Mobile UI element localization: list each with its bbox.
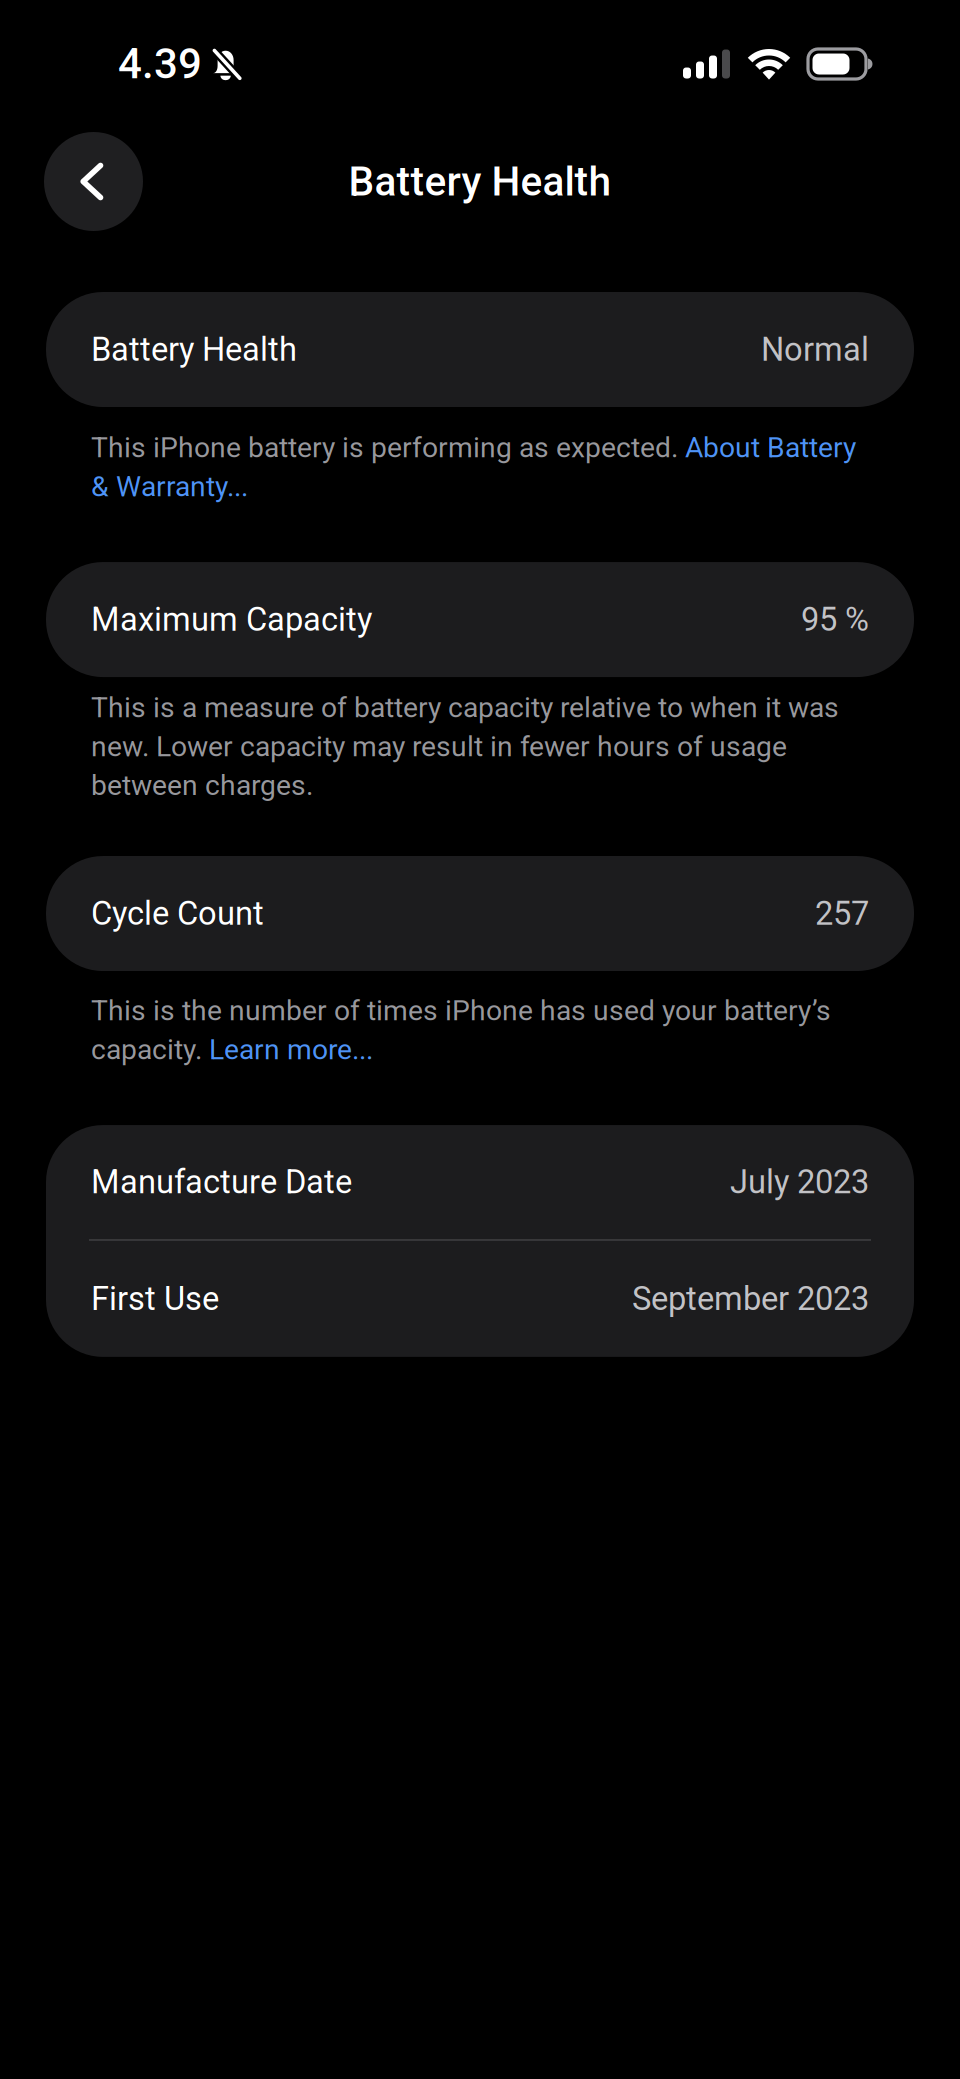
staticText: July 2023 <box>730 1163 869 1201</box>
staticText: This iPhone battery is performing as exp… <box>91 431 856 503</box>
button[interactable]: Learn more <box>0 994 960 1066</box>
staticText: Maximum Capacity <box>91 600 372 639</box>
button[interactable]: Maximum Capacity <box>0 562 960 677</box>
staticText: Battery Health <box>348 158 611 205</box>
button[interactable]: About Battery & Warranty <box>0 431 960 503</box>
staticText: This is a measure of battery capacity re… <box>91 691 839 802</box>
staticText: 95 % <box>801 600 869 639</box>
staticText: 4.39 <box>118 39 202 89</box>
staticText: This is the number of times iPhone has u… <box>91 994 831 1066</box>
staticText: First Use <box>91 1280 219 1318</box>
staticText: Manufacture Date <box>91 1163 352 1201</box>
staticText: Normal <box>761 330 869 369</box>
staticText: Battery Health <box>91 330 297 369</box>
button[interactable]: Battery Health <box>0 292 960 407</box>
staticText: 257 <box>815 894 869 933</box>
staticText: Cycle Count <box>91 894 264 933</box>
button[interactable]: Cycle Count <box>0 856 960 971</box>
staticText: September 2023 <box>632 1280 869 1318</box>
button[interactable]: Back <box>44 132 143 231</box>
